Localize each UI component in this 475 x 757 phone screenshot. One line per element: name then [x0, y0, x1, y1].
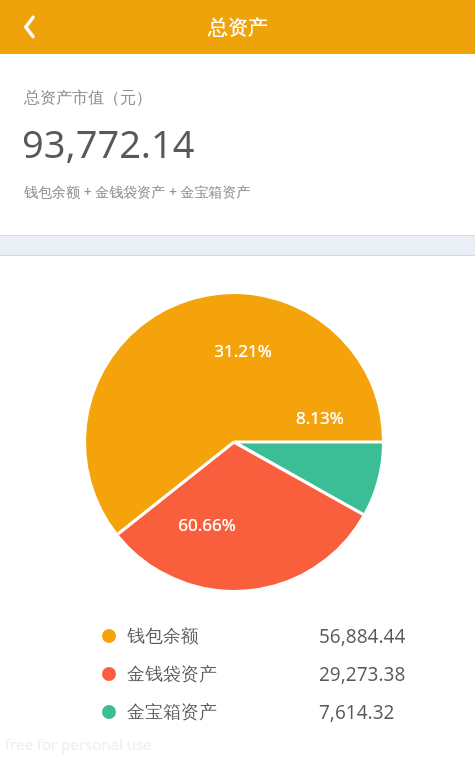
staticText: 60.66% [147, 513, 267, 536]
staticText: 8.13% [260, 406, 380, 429]
button[interactable]: 金宝箱资产 [0, 693, 475, 731]
staticText: 金宝箱资产 [127, 701, 217, 724]
button[interactable]: Back [0, 0, 62, 54]
staticText: 钱包余额 + 金钱袋资产 + 金宝箱资产 [24, 182, 251, 201]
button[interactable]: 金钱袋资产 [0, 655, 475, 693]
staticText: free for personal use [5, 734, 152, 754]
button[interactable]: 钱包余额 [0, 617, 475, 655]
staticText: 31.21% [183, 339, 303, 362]
staticText: 金钱袋资产 [127, 663, 217, 686]
staticText: 总资产市值（元） [24, 88, 152, 108]
staticText: 29,273.38 [319, 661, 475, 687]
staticText: 7,614.32 [319, 699, 475, 725]
staticText: 93,772.14 [22, 117, 195, 169]
staticText: 56,884.44 [319, 623, 475, 649]
staticText: 总资产 [208, 15, 268, 40]
staticText: 钱包余额 [127, 625, 199, 648]
